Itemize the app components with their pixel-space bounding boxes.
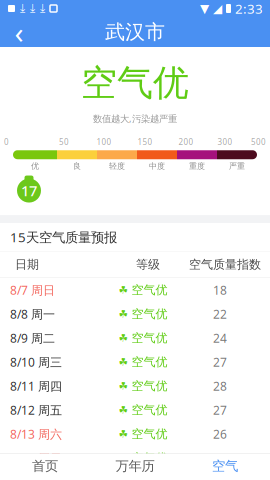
staticText: 8/11 周四 bbox=[10, 378, 62, 394]
staticText: ☘ bbox=[118, 284, 128, 296]
staticText: 轻度 bbox=[109, 161, 125, 171]
staticText: 武汉市 bbox=[105, 20, 165, 44]
staticText: 50 bbox=[59, 137, 69, 147]
staticText: 8/13 周六 bbox=[10, 426, 62, 442]
button[interactable]: 万年历 bbox=[90, 454, 180, 480]
staticText: ⤓ bbox=[20, 3, 25, 14]
staticText: 空气优 bbox=[131, 427, 167, 441]
staticText: 日期 bbox=[15, 257, 39, 272]
staticText: 空气质量指数 bbox=[189, 257, 261, 272]
staticText: 8/7 周日 bbox=[10, 282, 55, 298]
staticText: 8/8 周一 bbox=[10, 306, 55, 322]
button[interactable]: 8/13 周六 bbox=[0, 422, 270, 446]
staticText: ‹ bbox=[14, 12, 23, 51]
staticText: 24 bbox=[213, 330, 227, 346]
staticText: ☘ bbox=[118, 404, 128, 416]
button[interactable]: 8/14 周日 bbox=[0, 446, 270, 470]
button[interactable]: 8/11 周四 bbox=[0, 374, 270, 398]
staticText: 空气优 bbox=[131, 379, 167, 393]
staticText: 8/12 周五 bbox=[10, 402, 62, 418]
button[interactable]: 空气 bbox=[180, 454, 270, 480]
staticText: ⤓ bbox=[40, 3, 45, 14]
staticText: 优 bbox=[31, 161, 39, 171]
staticText: 22 bbox=[213, 306, 227, 322]
staticText: 28 bbox=[213, 378, 227, 394]
staticText: 空气 bbox=[212, 458, 238, 474]
staticText: 8/9 周二 bbox=[10, 330, 55, 346]
staticText: 等级 bbox=[136, 257, 160, 272]
staticText: 26 bbox=[213, 426, 227, 442]
staticText: 首页 bbox=[32, 458, 58, 474]
staticText: 15天空气质量预报 bbox=[10, 228, 117, 246]
staticText: ☘ bbox=[118, 308, 128, 320]
staticText: 空气优 bbox=[131, 403, 167, 417]
staticText: 500 bbox=[251, 137, 266, 147]
button[interactable]: 8/8 周一 bbox=[0, 302, 270, 326]
staticText: 数值越大,污染越严重 bbox=[93, 112, 177, 125]
staticText: 27 bbox=[213, 402, 227, 418]
staticText: 8/14 周日 bbox=[10, 450, 62, 466]
staticText: 2:33 bbox=[235, 0, 263, 17]
button[interactable]: 8/10 周三 bbox=[0, 350, 270, 374]
staticText: 空气优 bbox=[131, 451, 167, 465]
staticText: 空气优 bbox=[131, 283, 167, 297]
staticText: ☘ bbox=[118, 332, 128, 344]
staticText: 300 bbox=[217, 137, 232, 147]
staticText: ☘ bbox=[118, 452, 128, 464]
button[interactable]: 8/12 周五 bbox=[0, 398, 270, 422]
button[interactable]: 首页 bbox=[0, 454, 90, 480]
staticText: 28 bbox=[213, 450, 227, 466]
staticText: 150 bbox=[137, 137, 152, 147]
staticText: 严重 bbox=[229, 161, 245, 171]
staticText: ▼ bbox=[200, 2, 209, 15]
staticText: 重度 bbox=[189, 161, 205, 171]
staticText: 空气优 bbox=[81, 61, 189, 105]
staticText: 0 bbox=[4, 137, 9, 147]
staticText: 空气优 bbox=[131, 331, 167, 345]
staticText: ☘ bbox=[118, 356, 128, 368]
staticText: ☘ bbox=[118, 380, 128, 392]
staticText: 200 bbox=[178, 137, 193, 147]
staticText: 18 bbox=[213, 282, 227, 298]
staticText: 空气优 bbox=[131, 307, 167, 321]
button[interactable]: 8/7 周日 bbox=[0, 278, 270, 302]
staticText: 空气优 bbox=[131, 355, 167, 369]
staticText: ◢ bbox=[213, 2, 222, 15]
staticText: ⤓ bbox=[30, 3, 35, 14]
staticText: 中度 bbox=[149, 161, 165, 171]
staticText: 100 bbox=[96, 137, 111, 147]
staticText: 17 bbox=[21, 181, 37, 200]
button[interactable]: 8/15 周一 bbox=[0, 470, 270, 480]
staticText: ☘ bbox=[118, 428, 128, 440]
staticText: 27 bbox=[213, 354, 227, 370]
button[interactable]: 8/9 周二 bbox=[0, 326, 270, 350]
staticText: 8/10 周三 bbox=[10, 354, 62, 370]
staticText: 良 bbox=[73, 161, 81, 171]
staticText: 万年历 bbox=[115, 458, 154, 474]
button[interactable]: 返回 bbox=[0, 17, 38, 47]
